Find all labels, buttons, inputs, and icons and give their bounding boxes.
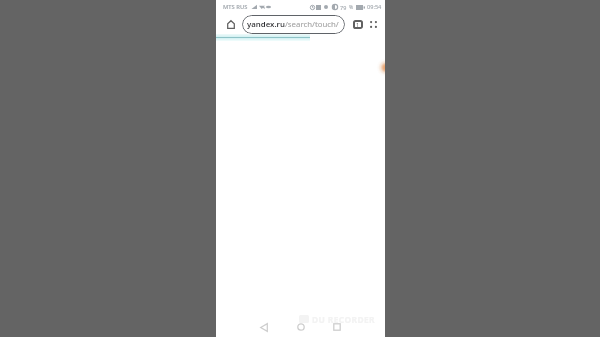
button[interactable]: Tabs [350, 16, 366, 32]
button[interactable]: yandex.ru/search/touch/ [242, 15, 345, 34]
button[interactable]: Screen recorder [376, 58, 385, 77]
staticText: DU RECORDER [312, 314, 375, 324]
staticText: 1 [356, 21, 360, 28]
staticText: 09:54 [367, 3, 382, 11]
button[interactable]: Menu [365, 16, 381, 32]
staticText: yandex.ru/search/touch/ [247, 19, 339, 30]
staticText: % [349, 4, 354, 11]
staticText: MTS RUS [223, 3, 248, 11]
button[interactable]: Recents [329, 319, 345, 335]
button[interactable]: Home [223, 16, 239, 32]
button[interactable]: Back [256, 319, 272, 335]
staticText: 79 [340, 4, 347, 11]
button[interactable]: Home [293, 319, 309, 335]
